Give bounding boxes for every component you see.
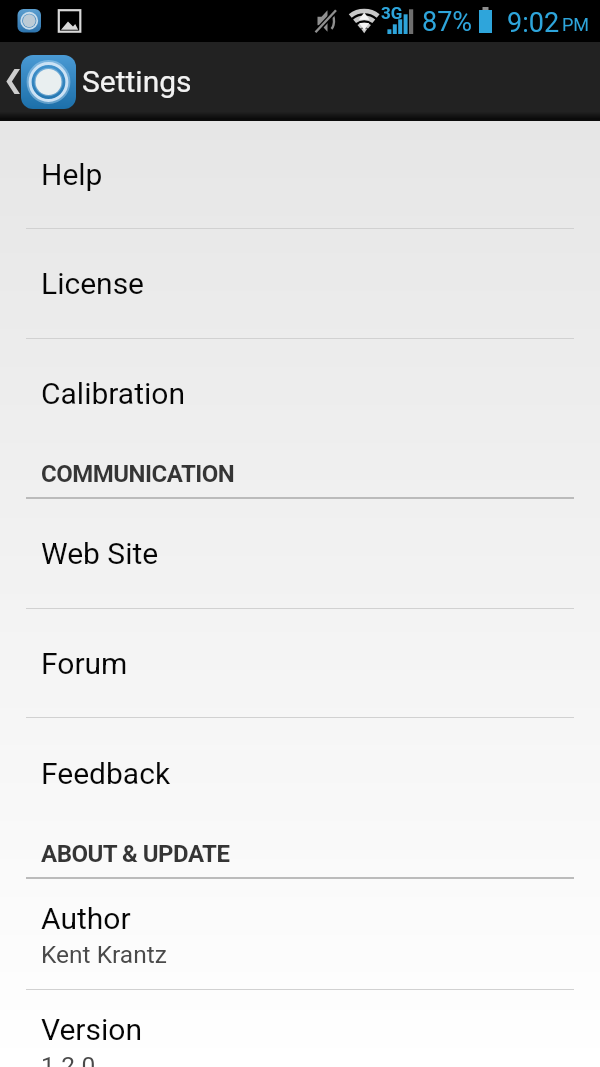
button[interactable]: Navigate up, Settings [0,42,82,121]
button[interactable]: Forum [0,609,600,717]
button[interactable]: Help [0,121,600,228]
staticText: Forum [41,646,128,681]
staticText: Web Site [41,536,159,571]
button[interactable]: Feedback [0,718,600,828]
staticText: 3G [381,3,403,23]
staticText: Feedback [41,756,171,791]
button[interactable]: Author [0,879,600,989]
button[interactable]: License [0,229,600,338]
staticText: Author [41,901,131,936]
staticText: Kent Krantz [41,940,167,969]
staticText: 87% [422,6,473,38]
staticText: ABOUT & UPDATE [41,840,230,868]
staticText: COMMUNICATION [41,460,235,488]
staticText: License [41,266,145,301]
button[interactable]: Calibration [0,339,600,448]
staticText: PM [562,14,590,35]
staticText: 9:02 [507,7,560,39]
button[interactable]: Web Site [0,499,600,608]
staticText: Version [41,1012,142,1047]
staticText: Calibration [41,376,185,411]
staticText: Help [41,157,103,192]
staticText: Settings [82,64,192,99]
button[interactable]: Version [0,990,600,1067]
staticText: 1.2.0 [41,1051,96,1067]
